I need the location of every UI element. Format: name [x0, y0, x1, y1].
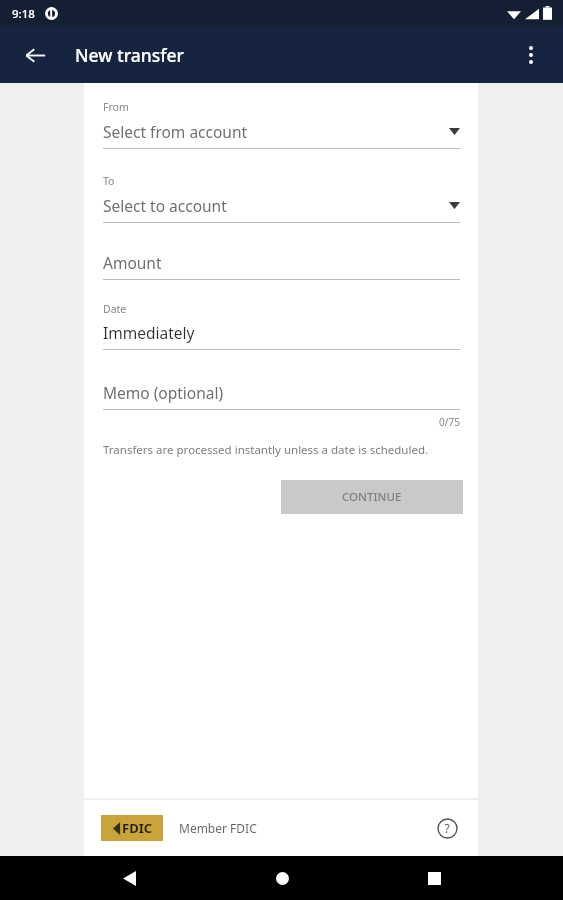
staticText: Amount — [103, 252, 162, 273]
staticText: To — [103, 174, 115, 188]
button[interactable]: Memo (optional) — [103, 382, 460, 403]
button[interactable]: Select to account — [103, 195, 460, 216]
button[interactable]: Recent apps — [410, 856, 458, 900]
staticText: New transfer — [75, 43, 184, 67]
staticText: Select to account — [103, 195, 227, 216]
staticText: Immediately — [103, 322, 195, 343]
staticText: Date — [103, 302, 127, 316]
staticText: Select from account — [103, 121, 248, 142]
staticText: CONTINUE — [342, 489, 402, 505]
button[interactable]: More options — [509, 33, 553, 77]
button[interactable]: Amount — [103, 252, 460, 273]
button[interactable]: Back — [105, 856, 153, 900]
staticText: FDIC — [122, 819, 153, 837]
staticText: 9:18 — [12, 6, 35, 22]
staticText: ? — [444, 820, 450, 836]
staticText: 0/75 — [439, 415, 460, 429]
button[interactable]: Select from account — [103, 121, 460, 142]
button[interactable]: CONTINUE — [281, 480, 463, 514]
button[interactable]: Home — [258, 856, 306, 900]
button[interactable]: Back — [14, 34, 56, 76]
staticText: Member FDIC — [179, 820, 257, 836]
staticText: Memo (optional) — [103, 382, 224, 403]
button[interactable]: Immediately — [103, 322, 460, 343]
button[interactable]: Help — [432, 813, 462, 843]
staticText: From — [103, 100, 129, 114]
staticText: Transfers are processed instantly unless… — [103, 442, 429, 458]
